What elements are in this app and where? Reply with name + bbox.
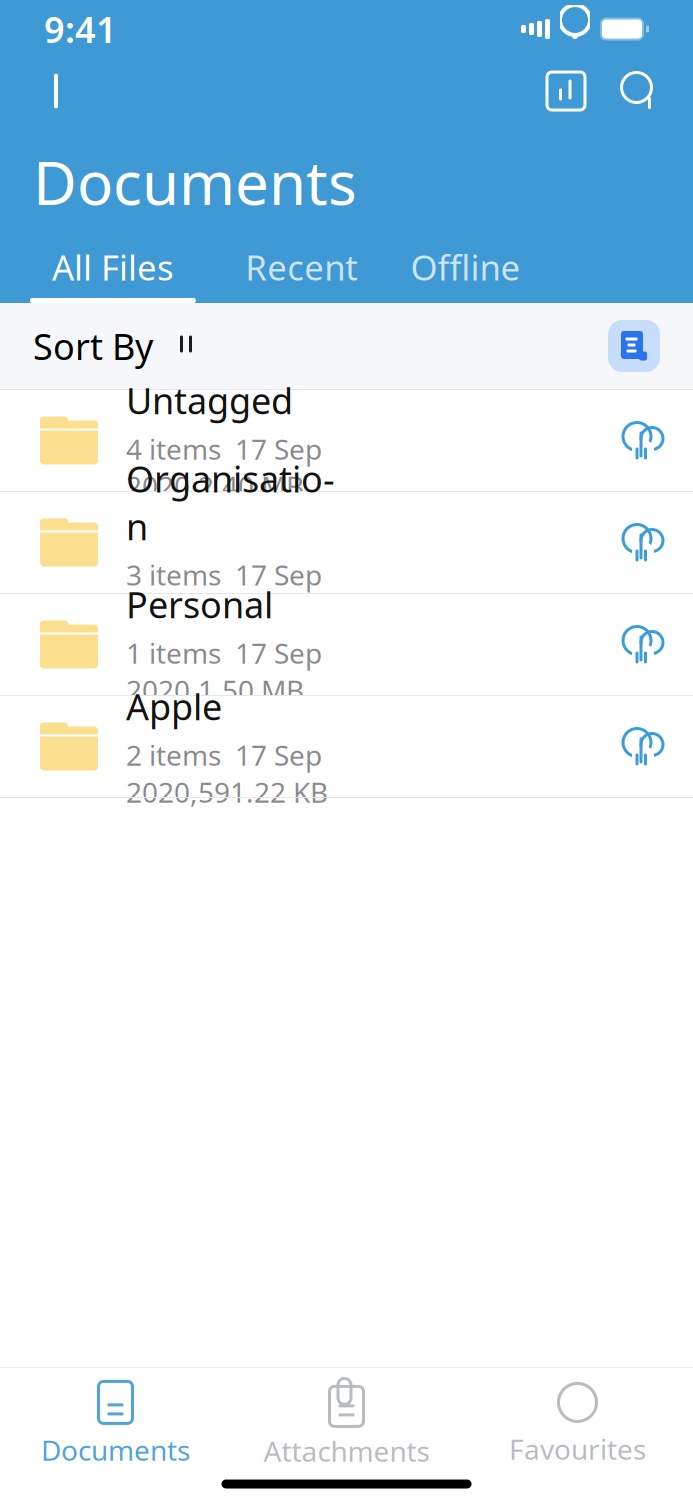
- staticText: 3 items 17 Sep 2020,1.46 MB: [126, 556, 322, 630]
- button[interactable]: Attachments: [231, 1366, 462, 1470]
- staticText: 4 items 17 Sep 2020,2.40 MB: [126, 430, 322, 505]
- button[interactable]: Apple: [0, 696, 693, 798]
- staticText: 2 items 17 Sep 2020,591.22 KB: [126, 736, 328, 811]
- staticText: All Files: [52, 244, 174, 290]
- staticText: Personal: [126, 580, 273, 628]
- staticText: Documents: [41, 1431, 190, 1469]
- staticText: Offline: [410, 244, 520, 290]
- button[interactable]: Untagged: [0, 390, 693, 492]
- button[interactable]: Back: [22, 63, 80, 119]
- staticText: Recent: [245, 244, 358, 290]
- staticText: Sort By: [33, 322, 153, 370]
- button[interactable]: Layout options: [608, 320, 660, 372]
- button[interactable]: Documents: [0, 1367, 231, 1469]
- button[interactable]: Offline: [403, 244, 527, 303]
- button[interactable]: Recent: [242, 244, 362, 303]
- staticText: 1 items 17 Sep 2020,1.50 MB: [126, 634, 322, 709]
- button[interactable]: Search: [609, 60, 671, 122]
- staticText: Organisation: [126, 454, 335, 550]
- button[interactable]: Sort By: [33, 310, 199, 382]
- staticText: Untagged: [126, 376, 293, 424]
- staticText: Apple: [126, 682, 222, 730]
- button[interactable]: Personal: [0, 594, 693, 696]
- button[interactable]: Organisation: [0, 492, 693, 594]
- button[interactable]: Select: [537, 62, 595, 120]
- button[interactable]: All Files: [30, 244, 196, 303]
- staticText: Documents: [33, 142, 357, 222]
- staticText: 9:41: [44, 5, 117, 53]
- button[interactable]: Favourites: [462, 1368, 693, 1468]
- staticText: Attachments: [263, 1432, 429, 1470]
- staticText: Favourites: [509, 1430, 646, 1468]
